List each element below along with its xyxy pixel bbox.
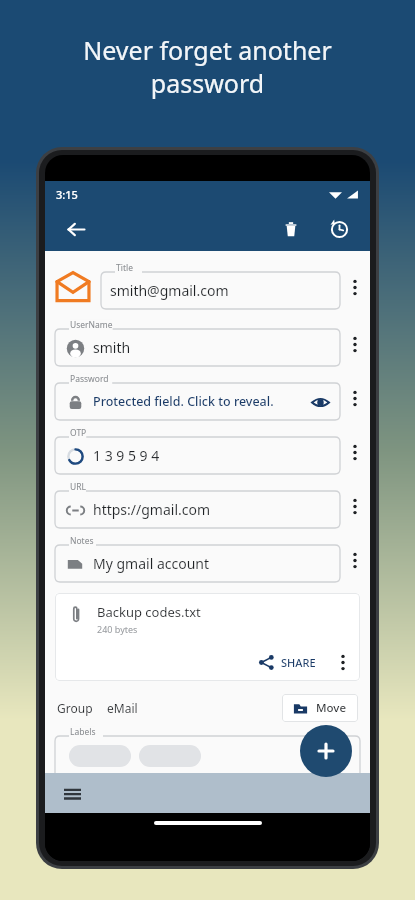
staticText: https://gmail.com xyxy=(93,500,331,519)
button[interactable] xyxy=(69,745,131,767)
button[interactable]: Delete xyxy=(274,212,308,246)
staticText: Backup codes.txt xyxy=(97,603,201,621)
button[interactable]: More options xyxy=(340,265,370,309)
button[interactable]: More options xyxy=(340,376,370,420)
staticText: Protected field. Click to reveal. xyxy=(93,393,309,410)
staticText: smith xyxy=(93,338,331,357)
button[interactable]: Menu xyxy=(57,778,87,808)
staticText: eMail xyxy=(107,700,138,716)
staticText: 1 3 9 5 9 4 xyxy=(93,446,331,465)
button[interactable]: UserName xyxy=(55,322,340,366)
staticText: SHARE xyxy=(281,655,316,670)
staticText: OTP xyxy=(70,427,87,439)
button[interactable]: Backup codes.txt xyxy=(55,593,360,681)
button[interactable]: More options xyxy=(340,484,370,528)
staticText: smith@gmail.com xyxy=(110,281,331,300)
button[interactable] xyxy=(139,745,201,767)
staticText: Labels xyxy=(70,726,96,738)
staticText: UserName xyxy=(70,319,113,331)
button[interactable]: URL xyxy=(55,484,340,528)
staticText: Never forget another password xyxy=(24,33,391,100)
staticText: 3:15 xyxy=(56,187,78,202)
button[interactable]: Title xyxy=(101,265,340,309)
button[interactable]: SHARE xyxy=(253,651,322,674)
button[interactable]: Add xyxy=(300,725,352,777)
button[interactable]: OTP xyxy=(55,430,340,474)
button[interactable]: Back xyxy=(59,212,93,246)
staticText: Move xyxy=(316,700,347,716)
staticText: My gmail account xyxy=(93,554,331,573)
staticText: 240 bytes xyxy=(97,623,138,635)
button[interactable]: Password xyxy=(55,376,340,420)
button[interactable]: History xyxy=(322,212,356,246)
staticText: Group xyxy=(57,700,93,716)
button[interactable]: More options xyxy=(340,538,370,582)
staticText: Password xyxy=(70,373,109,385)
staticText: Notes xyxy=(70,535,94,547)
button[interactable]: Move xyxy=(282,694,358,722)
button[interactable]: Attachment options xyxy=(332,649,354,675)
staticText: URL xyxy=(70,481,86,493)
button[interactable]: Notes xyxy=(55,538,340,582)
staticText: Title xyxy=(116,262,133,274)
button[interactable]: More options xyxy=(340,322,370,366)
button[interactable]: More options xyxy=(340,430,370,474)
